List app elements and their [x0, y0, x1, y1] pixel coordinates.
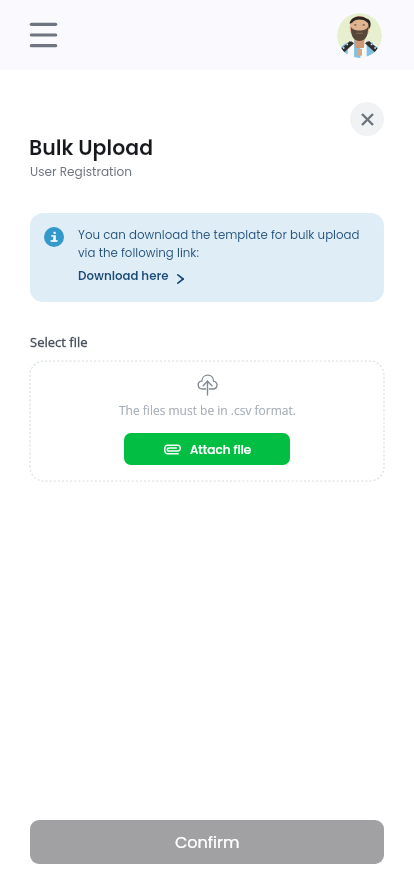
button[interactable]: Profile: [337, 13, 382, 58]
button[interactable]: Menu: [14, 13, 58, 57]
staticText: Confirm: [175, 831, 240, 853]
button[interactable]: Attach file: [124, 433, 290, 465]
staticText: The files must be in .csv format.: [119, 402, 296, 418]
staticText: You can download the template for bulk u…: [78, 227, 374, 261]
staticText: User Registration: [30, 163, 132, 180]
staticText: Attach file: [190, 441, 252, 458]
staticText: Select file: [30, 333, 88, 351]
button[interactable]: Confirm: [30, 820, 384, 864]
button[interactable]: Download here: [78, 268, 184, 285]
staticText: Download here: [78, 268, 169, 285]
button[interactable]: Close: [350, 102, 384, 136]
staticText: Bulk Upload: [29, 133, 154, 162]
